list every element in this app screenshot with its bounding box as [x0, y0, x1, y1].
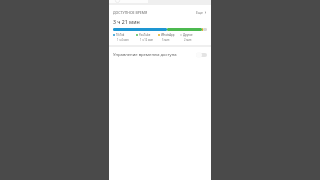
staticText: 3 ч 21 мин — [113, 18, 140, 25]
staticText: 1 ч 12 мин — [140, 38, 154, 42]
button[interactable]: ДОСТУПНОЕ ВРЕМЯ — [109, 9, 211, 15]
button[interactable]: Управление временем доступа — [109, 47, 211, 63]
staticText: Управление временем доступа — [113, 52, 177, 58]
staticText: 5 мин — [162, 38, 170, 42]
staticText: 2 мин — [184, 38, 192, 42]
staticText: TikTok — [116, 33, 125, 37]
staticText: ДОСТУПНОЕ ВРЕМЯ — [113, 10, 148, 15]
staticText: YouTube — [139, 33, 151, 37]
button[interactable]: Управление временем доступа — [196, 52, 207, 58]
staticText: WhatsApp — [161, 33, 175, 37]
staticText: Еще — [196, 10, 203, 15]
staticText: 1 ч 4 мин — [117, 38, 129, 42]
staticText: Другое — [183, 33, 193, 37]
